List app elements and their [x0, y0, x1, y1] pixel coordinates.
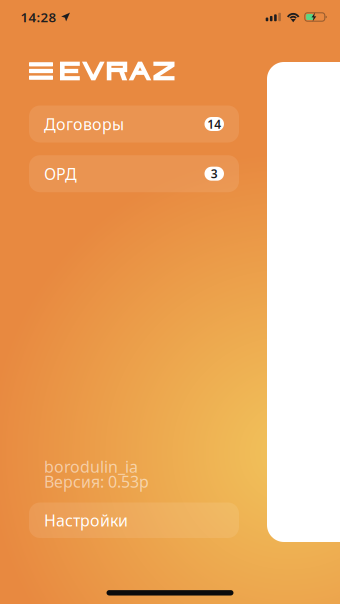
staticText: 14:28: [20, 8, 56, 26]
staticText: 3: [211, 166, 218, 182]
button[interactable]: Настройки: [29, 502, 239, 538]
button[interactable]: ОРД: [29, 155, 239, 192]
staticText: Настройки: [44, 510, 128, 531]
button[interactable]: Договоры: [29, 105, 239, 142]
staticText: borodulin_ia: [44, 456, 138, 477]
staticText: 14: [207, 116, 221, 132]
staticText: Договоры: [44, 113, 124, 135]
staticText: ОРД: [44, 163, 77, 184]
staticText: Версия: 0.53p: [44, 471, 149, 492]
